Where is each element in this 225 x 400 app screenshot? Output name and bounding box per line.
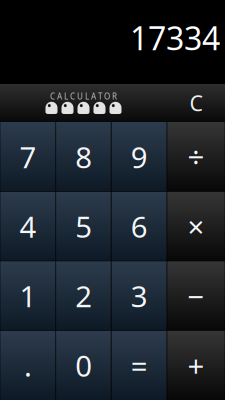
staticText: 2 — [75, 276, 92, 315]
button[interactable]: Subtract — [167, 261, 225, 330]
staticText: × — [187, 207, 204, 246]
staticText: C — [189, 89, 202, 117]
button[interactable]: 5 — [56, 191, 111, 261]
staticText: 17334 — [130, 16, 220, 59]
button[interactable]: Divide — [167, 122, 225, 191]
button[interactable]: 1 — [0, 261, 56, 330]
staticText: 1 — [20, 276, 37, 315]
staticText: 5 — [75, 207, 92, 246]
staticText: 7 — [20, 137, 37, 176]
staticText: ÷ — [187, 137, 204, 176]
button[interactable]: = — [111, 330, 167, 400]
staticText: . — [24, 346, 32, 385]
button[interactable]: Add — [167, 330, 225, 400]
staticText: 9 — [131, 137, 148, 176]
button[interactable]: 6 — [111, 191, 167, 261]
button[interactable]: Multiply — [167, 191, 225, 261]
button[interactable]: C — [167, 84, 225, 122]
staticText: 4 — [20, 207, 37, 246]
staticText: 8 — [75, 137, 92, 176]
staticText: = — [131, 346, 148, 385]
button[interactable]: 9 — [111, 122, 167, 191]
button[interactable]: 4 — [0, 191, 56, 261]
button[interactable]: 2 — [56, 261, 111, 330]
staticText: 3 — [131, 276, 148, 315]
button[interactable]: 0 — [56, 330, 111, 400]
staticText: + — [187, 346, 204, 385]
button[interactable]: . — [0, 330, 56, 400]
staticText: 0 — [75, 346, 92, 385]
button[interactable]: 8 — [56, 122, 111, 191]
staticText: 6 — [131, 207, 148, 246]
staticText: C A L C U L A T O R — [50, 91, 117, 102]
button[interactable]: 7 — [0, 122, 56, 191]
staticText: − — [187, 276, 204, 315]
button[interactable]: 3 — [111, 261, 167, 330]
